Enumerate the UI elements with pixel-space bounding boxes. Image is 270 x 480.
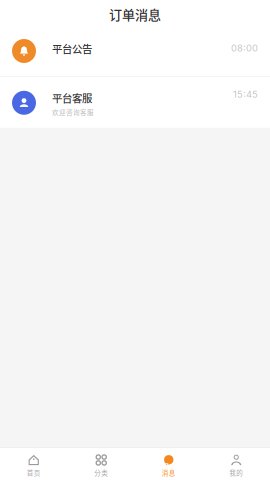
button[interactable]: 平台客服	[0, 77, 270, 128]
staticText: 平台客服	[52, 90, 92, 105]
staticText: 首页	[27, 468, 41, 477]
staticText: 分类	[94, 468, 108, 477]
button[interactable]: 分类	[67, 448, 135, 480]
button[interactable]: 我的	[202, 448, 270, 480]
staticText: 我的	[229, 468, 243, 477]
button[interactable]: 首页	[0, 448, 67, 480]
staticText: 欢迎咨询客服	[52, 107, 94, 117]
staticText: 08:00	[231, 42, 258, 54]
staticText: 平台公告	[52, 41, 92, 56]
staticText: 订单消息	[109, 4, 161, 23]
button[interactable]: 消息	[135, 448, 202, 480]
staticText: 15:45	[233, 89, 258, 100]
button[interactable]: 平台公告	[0, 28, 270, 76]
staticText: 消息	[162, 468, 176, 477]
